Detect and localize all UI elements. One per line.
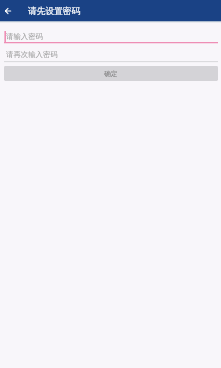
- staticText: 请再次输入密码: [6, 50, 58, 59]
- staticText: 确定: [104, 70, 118, 78]
- button[interactable]: Back: [0, 2, 16, 19]
- staticText: 请先设置密码: [28, 6, 81, 17]
- button[interactable]: 请输入密码: [0, 23, 221, 43]
- button[interactable]: 请再次输入密码: [0, 44, 221, 62]
- staticText: 请输入密码: [6, 32, 43, 41]
- button[interactable]: 确定: [4, 66, 218, 81]
